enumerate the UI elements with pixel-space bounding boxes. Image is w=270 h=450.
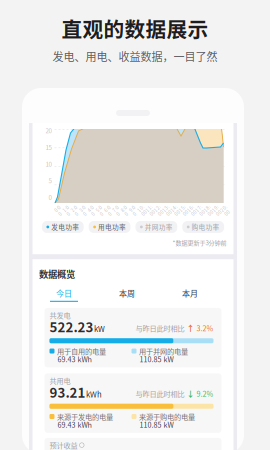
staticText: 10:00 xyxy=(139,205,146,216)
staticText: 20:00 xyxy=(222,205,229,216)
staticText: 0 xyxy=(48,194,51,201)
staticText: 共发电 xyxy=(49,311,70,319)
staticText: *数据更新于3分钟前 xyxy=(172,239,226,246)
staticText: 9:00 xyxy=(131,205,138,216)
staticText: 购电功率 xyxy=(192,223,220,231)
staticText: 用电功率 xyxy=(98,223,126,231)
staticText: 10 xyxy=(45,160,51,168)
staticText: 发电、用电、收益数据，一目了然 xyxy=(52,49,217,63)
staticText: 20 xyxy=(45,127,51,134)
staticText: 12:00 xyxy=(156,205,163,216)
staticText: 13:00 xyxy=(164,205,171,216)
staticText: 用于自用的电量 xyxy=(57,347,106,355)
staticText: 直观的数据展示 xyxy=(61,16,208,40)
staticText: kWh xyxy=(86,390,102,399)
button[interactable]: 用电功率 xyxy=(89,221,130,233)
staticText: 来源于购电的电量 xyxy=(139,412,195,421)
staticText: 本月 xyxy=(182,288,198,298)
staticText: ↓ xyxy=(186,389,194,398)
staticText: 17:00 xyxy=(197,205,204,216)
staticText: 数据概览 xyxy=(39,268,75,279)
staticText: 19:00 xyxy=(214,205,221,216)
staticText: 9.2% xyxy=(196,389,213,398)
staticText: 15 xyxy=(45,144,51,151)
staticText: 15:00 xyxy=(180,205,187,216)
staticText: 93.21 xyxy=(49,384,85,400)
staticText: 0:00 xyxy=(56,205,63,216)
button[interactable]: 本周 xyxy=(95,288,158,302)
button[interactable]: 购电功率 xyxy=(182,221,224,233)
staticText: 共用电 xyxy=(49,376,70,385)
staticText: 69.43 kWh xyxy=(57,355,91,363)
staticText: 5 xyxy=(48,177,51,184)
staticText: 与昨日此时相比 xyxy=(135,389,184,398)
staticText: 预计收益 xyxy=(49,441,77,449)
staticText: 发电功率 xyxy=(51,223,79,231)
staticText: 333.21 xyxy=(49,448,93,450)
staticText: 69.43 kWh xyxy=(57,420,91,429)
button[interactable]: 本月 xyxy=(158,288,221,302)
staticText: 11:00 xyxy=(147,205,154,216)
button[interactable]: 今日 xyxy=(32,288,95,302)
staticText: 用于并网的电量 xyxy=(139,347,188,355)
staticText: 今日 xyxy=(56,288,72,298)
staticText: 来源于发电的电量 xyxy=(57,412,113,421)
staticText: 3.2% xyxy=(196,324,213,332)
button[interactable]: 并网功率 xyxy=(135,221,177,233)
staticText: 6:00 xyxy=(106,205,113,216)
staticText: 16:00 xyxy=(189,205,196,216)
staticText: 5:00 xyxy=(97,205,104,216)
staticText: 本周 xyxy=(119,288,135,298)
staticText: 3:00 xyxy=(81,205,88,216)
staticText: 110.85 kW xyxy=(139,420,173,429)
staticText: 522.23 xyxy=(49,318,93,334)
staticText: ↑ xyxy=(186,323,194,333)
staticText: 并网功率 xyxy=(145,223,173,231)
staticText: 4:00 xyxy=(89,205,96,216)
staticText: 2:00 xyxy=(73,205,80,216)
staticText: 8:00 xyxy=(122,205,129,216)
button[interactable]: 发电功率 xyxy=(42,221,84,233)
staticText: 7:00 xyxy=(114,205,121,216)
staticText: 14:00 xyxy=(172,205,179,216)
staticText: 18:00 xyxy=(205,205,212,216)
staticText: 1:00 xyxy=(64,205,71,216)
staticText: 110.85 kW xyxy=(139,355,173,363)
staticText: 与昨日此时相比 xyxy=(135,324,184,332)
staticText: kW xyxy=(94,324,105,333)
